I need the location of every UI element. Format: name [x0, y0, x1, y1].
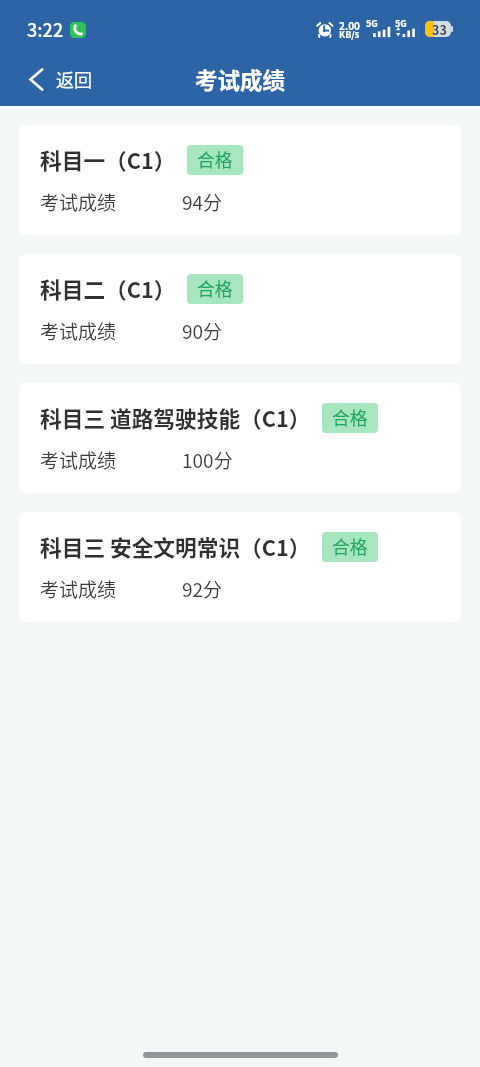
button[interactable]: 科目一（C1）: [19, 125, 461, 235]
staticText: 94分: [182, 188, 223, 216]
staticText: 90分: [182, 317, 223, 345]
staticText: 科目三 安全文明常识（C1）: [40, 531, 311, 562]
other: Alarm: [316, 21, 334, 39]
staticText: 科目三 道路驾驶技能（C1）: [40, 402, 311, 433]
staticText: 科目二（C1）: [40, 273, 176, 304]
staticText: 科目一（C1）: [40, 144, 176, 175]
button[interactable]: 科目三 安全文明常识（C1）: [19, 512, 461, 622]
button[interactable]: 科目二（C1）: [19, 254, 461, 364]
staticText: 3:22: [27, 16, 64, 42]
button[interactable]: Back: [0, 62, 106, 100]
staticText: 合格: [197, 146, 233, 172]
staticText: 合格: [197, 275, 233, 301]
staticText: 考试成绩: [40, 446, 117, 474]
staticText: 考试成绩: [40, 575, 117, 603]
staticText: 5G: [366, 17, 378, 30]
staticText: KB/s: [339, 28, 360, 41]
staticText: 33: [432, 21, 447, 36]
staticText: 考试成绩: [195, 63, 286, 96]
staticText: 2.00: [339, 18, 360, 32]
staticText: 返回: [56, 66, 92, 92]
staticText: 考试成绩: [40, 188, 117, 216]
other: Back: [29, 68, 43, 91]
button[interactable]: 科目三 道路驾驶技能（C1）: [19, 383, 461, 493]
staticText: 92分: [182, 575, 223, 603]
staticText: 考试成绩: [40, 317, 117, 345]
staticText: 5G: [395, 17, 407, 30]
staticText: 100分: [182, 446, 233, 474]
staticText: 合格: [332, 533, 368, 559]
staticText: 合格: [332, 404, 368, 430]
